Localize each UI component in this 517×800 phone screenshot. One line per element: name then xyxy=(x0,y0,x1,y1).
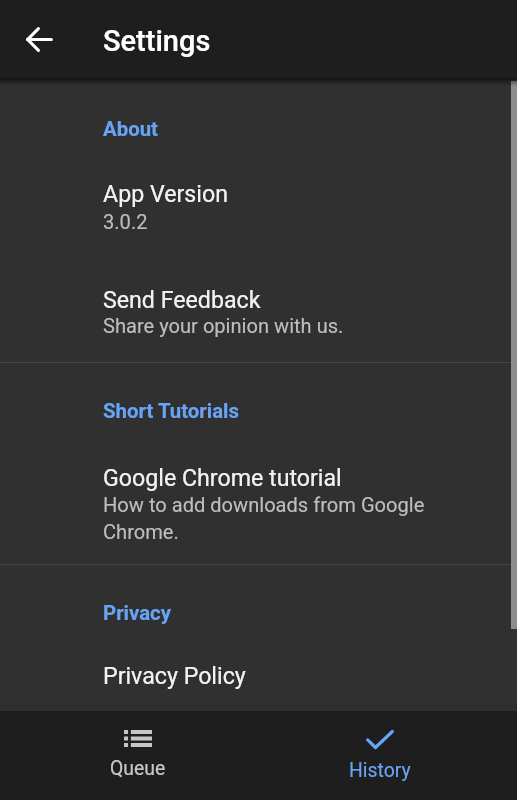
staticText: Queue xyxy=(110,757,166,780)
staticText: Share your opinion with us. xyxy=(103,314,344,338)
staticText: Google Chrome tutorial xyxy=(103,464,342,491)
staticText: Privacy Policy xyxy=(103,662,246,689)
staticText: About xyxy=(103,117,158,141)
button[interactable] xyxy=(0,642,517,704)
button[interactable]: History check xyxy=(259,711,501,800)
other: History check xyxy=(366,730,394,749)
staticText: Short Tutorials xyxy=(103,399,239,423)
staticText: Chrome. xyxy=(103,520,179,544)
button[interactable]: Navigate back xyxy=(13,13,65,65)
other: Queue list xyxy=(124,730,152,747)
staticText: How to add downloads from Google xyxy=(103,493,425,517)
staticText: 3.0.2 xyxy=(103,210,148,234)
button[interactable] xyxy=(0,444,517,552)
staticText: Send Feedback xyxy=(103,286,261,313)
button[interactable] xyxy=(0,160,517,240)
button[interactable] xyxy=(0,266,517,346)
button[interactable]: Queue list xyxy=(17,711,259,800)
staticText: History xyxy=(349,759,411,782)
staticText: Privacy xyxy=(103,601,171,625)
staticText: Settings xyxy=(103,24,211,58)
staticText: App Version xyxy=(103,180,228,207)
